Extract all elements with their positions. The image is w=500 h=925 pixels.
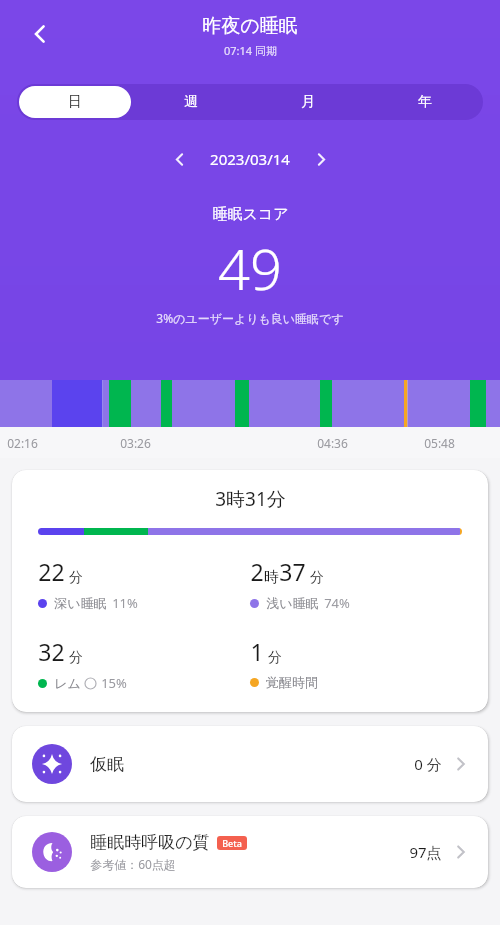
button[interactable]: 睡眠時呼吸の質 [12,816,488,888]
button[interactable]: 年 [368,86,481,118]
staticText: 昨夜の睡眠 [202,14,298,38]
staticText: 深い睡眠 [54,595,107,611]
staticText: 2 [250,556,264,587]
staticText: 49 [218,230,282,306]
staticText: Beta [222,837,242,849]
button[interactable]: Next day [304,142,338,176]
staticText: 分 [268,649,282,667]
staticText: 32 [38,636,65,667]
staticText: 浅い睡眠 [266,595,319,611]
staticText: 分 [69,649,83,667]
staticText: 3時31分 [215,486,286,512]
staticText: 74% [324,594,350,612]
staticText: 02:16 [7,435,38,451]
staticText: 37 [279,556,306,587]
button[interactable]: Back [18,12,62,56]
staticText: 週 [184,93,198,111]
staticText: 月 [301,93,315,111]
staticText: 07:14 同期 [224,43,277,58]
staticText: 3%のユーザーよりも良い睡眠です [156,310,344,326]
button[interactable]: 3時31分 [12,470,488,712]
staticText: 97点 [409,842,442,862]
button[interactable]: 週 [135,86,247,118]
staticText: 0 分 [414,754,442,774]
staticText: 日 [68,93,82,111]
button[interactable]: 仮眠 [12,726,488,802]
button[interactable]: 月 [251,86,364,118]
staticText: 04:36 [317,435,348,451]
staticText: 睡眠時呼吸の質 [90,832,210,853]
staticText: 参考値：60点超 [90,856,176,872]
staticText: 分 [310,569,324,587]
staticText: 年 [418,93,432,111]
button[interactable]: Previous day [162,142,196,176]
staticText: 15% [101,674,127,692]
staticText: 11% [112,594,138,612]
staticText: 1 [250,636,264,667]
staticText: 仮眠 [90,754,124,775]
staticText: 睡眠スコア [212,205,289,224]
staticText: 時 [264,568,279,587]
staticText: 03:26 [120,435,151,451]
staticText: 22 [38,556,65,587]
staticText: レム [54,675,81,691]
staticText: 05:48 [424,435,455,451]
staticText: 覚醒時間 [266,674,318,690]
button[interactable]: 日 [19,86,131,118]
staticText: 分 [69,569,83,587]
staticText: 2023/03/14 [210,149,290,169]
